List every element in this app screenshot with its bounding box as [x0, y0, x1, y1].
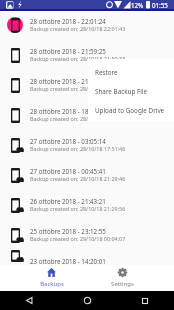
button[interactable]: 28 ottobre 2018 - 18:44:12 — [0, 103, 174, 133]
staticText: Backup created on: 28/10/18 17:51:46 — [30, 145, 126, 152]
staticText: Backups — [40, 280, 64, 288]
button[interactable]: 27 ottobre 2018 - 00:45:41 — [0, 163, 174, 193]
staticText: Backup created on: 28/10/18 22:01:43 — [30, 25, 126, 32]
staticText: 26 ottobre 2018 - 21:43:21 — [30, 197, 106, 205]
staticText: Backup created on: 28/10/18 21:29:46 — [30, 175, 126, 182]
staticText: Backup created on: 28/10/18 21:58:31 — [30, 85, 126, 92]
button[interactable]: 25 ottobre 2018 - 23:12:55 — [0, 223, 174, 253]
staticText: 25 ottobre 2018 - 23:12:55 — [30, 227, 106, 235]
staticText: 28 ottobre 2018 - 21:59:25 — [30, 47, 106, 55]
button[interactable]: 28 ottobre 2018 - 22:01:24 — [0, 13, 174, 43]
button[interactable]: 23 ottobre 2018 - 14:20:01 — [0, 253, 174, 265]
staticText: Settings — [111, 280, 134, 288]
staticText: Backup created on: 28/10/18 21:59:33 — [30, 55, 126, 62]
button[interactable]: 28 ottobre 2018 - 21:59:25 — [0, 43, 174, 73]
staticText: 12% — [131, 1, 144, 9]
other: Recents — [142, 298, 148, 304]
button[interactable]: Backups — [16, 268, 87, 288]
button[interactable]: Upload to Google Drive — [88, 100, 174, 119]
staticText: Backup created on: 28/10/18 21:29:56 — [30, 205, 126, 212]
staticText: Backup created on: 28/10/18 18:44:20 — [30, 115, 126, 122]
staticText: Share Backup File — [95, 87, 148, 96]
staticText: 01:55 — [152, 1, 168, 9]
button[interactable]: Restore — [88, 62, 174, 81]
staticText: 23 ottobre 2018 - 14:20:01 — [30, 257, 106, 265]
other: Back — [26, 297, 33, 304]
staticText: Backup created on: 29/10/18 00:04:07 — [30, 235, 126, 242]
staticText: 28 ottobre 2018 - 18:44:12 — [30, 107, 106, 115]
button[interactable]: 27 ottobre 2018 - 03:05:14 — [0, 133, 174, 163]
staticText: 27 ottobre 2018 - 00:45:41 — [30, 167, 106, 175]
other: Home — [84, 297, 91, 304]
staticText: Upload to Google Drive — [95, 106, 165, 115]
staticText: 28 ottobre 2018 - 21:58:23 — [30, 77, 106, 85]
staticText: Restore — [95, 68, 118, 77]
staticText: Backup created on: 28/10/18 14:20:10 — [30, 265, 126, 272]
button[interactable]: 28 ottobre 2018 - 21:58:23 — [0, 73, 174, 103]
button[interactable]: Settings — [87, 268, 158, 288]
button[interactable]: Share Backup File — [88, 81, 174, 100]
staticText: 27 ottobre 2018 - 03:05:14 — [30, 137, 106, 145]
button[interactable]: 26 ottobre 2018 - 21:43:21 — [0, 193, 174, 223]
staticText: 28 ottobre 2018 - 22:01:24 — [30, 17, 106, 25]
